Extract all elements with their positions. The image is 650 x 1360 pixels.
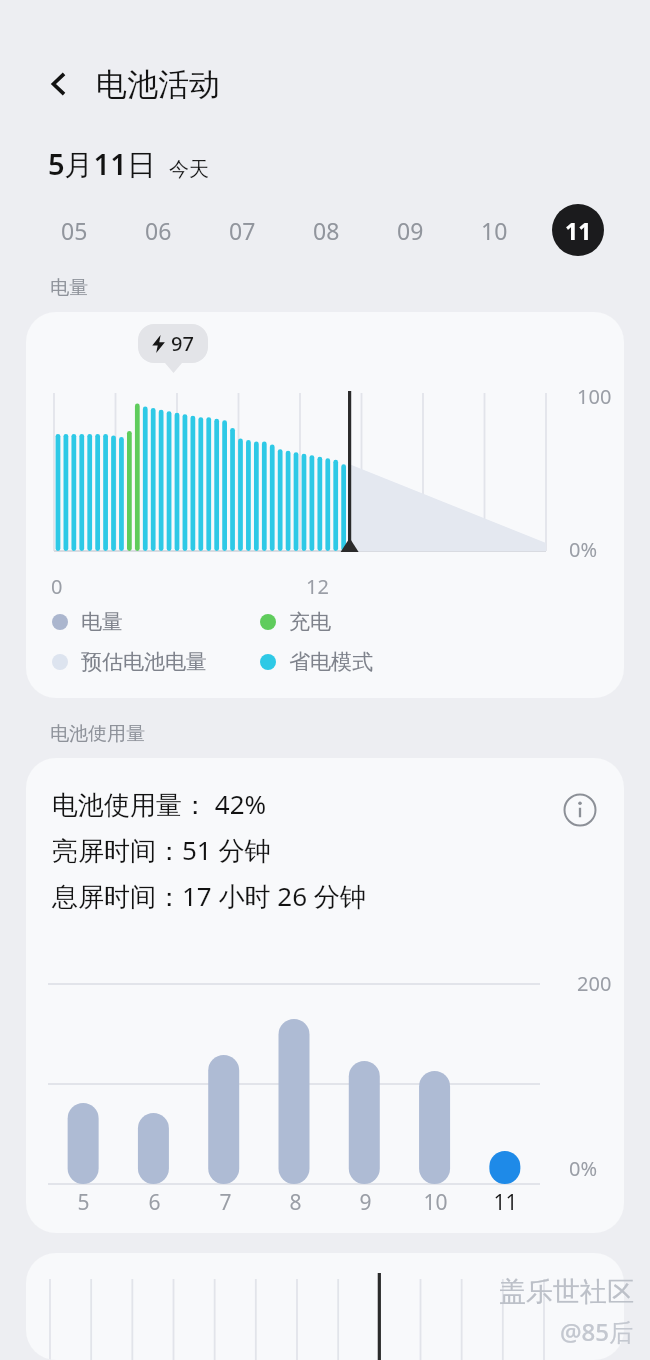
staticText: 5 bbox=[77, 1188, 90, 1217]
staticText: 0 bbox=[51, 573, 63, 600]
staticText: 09 bbox=[397, 215, 424, 246]
staticText: 电量 bbox=[81, 609, 123, 635]
button[interactable]: 电量 bbox=[52, 609, 123, 635]
staticText: 11 bbox=[493, 1188, 518, 1217]
staticText: 200 bbox=[577, 970, 612, 997]
button[interactable]: 充电 bbox=[260, 609, 331, 635]
button[interactable]: 97 bbox=[26, 312, 624, 698]
button[interactable]: 07 bbox=[200, 202, 284, 258]
staticText: 07 bbox=[229, 215, 256, 246]
button[interactable]: 11 bbox=[536, 202, 620, 258]
staticText: 97 bbox=[171, 330, 194, 357]
staticText: 10 bbox=[481, 215, 508, 246]
staticText: 息屏时间：17 小时 26 分钟 bbox=[52, 878, 366, 914]
button[interactable]: Back bbox=[32, 57, 86, 111]
staticText: 5月11日 bbox=[48, 144, 156, 184]
button[interactable]: 电池使用量： 42% bbox=[26, 758, 624, 1233]
staticText: 0% bbox=[569, 1155, 598, 1182]
button[interactable]: 预估电池电量 bbox=[52, 649, 207, 675]
button[interactable] bbox=[26, 1253, 624, 1360]
staticText: @85后 bbox=[560, 1315, 634, 1348]
staticText: 充电 bbox=[289, 609, 331, 635]
button[interactable]: 09 bbox=[368, 202, 452, 258]
staticText: 亮屏时间：51 分钟 bbox=[52, 832, 271, 868]
staticText: 电量 bbox=[50, 276, 88, 300]
staticText: 7 bbox=[219, 1188, 232, 1217]
staticText: 6 bbox=[148, 1188, 161, 1217]
staticText: 9 bbox=[359, 1188, 372, 1217]
staticText: 盖乐世社区 bbox=[499, 1275, 634, 1309]
staticText: 100 bbox=[577, 383, 612, 410]
staticText: 11 bbox=[565, 215, 592, 246]
staticText: 8 bbox=[289, 1188, 302, 1217]
staticText: 今天 bbox=[169, 157, 209, 182]
staticText: 电池活动 bbox=[96, 65, 220, 104]
button[interactable]: 05 bbox=[32, 202, 116, 258]
staticText: 10 bbox=[423, 1188, 448, 1217]
button[interactable]: 省电模式 bbox=[260, 649, 373, 675]
staticText: 预估电池电量 bbox=[81, 649, 207, 675]
staticText: 省电模式 bbox=[289, 649, 373, 675]
button[interactable]: 08 bbox=[284, 202, 368, 258]
staticText: 05 bbox=[61, 215, 88, 246]
staticText: 0% bbox=[569, 536, 598, 563]
staticText: 电池使用量： 42% bbox=[52, 786, 267, 822]
staticText: 06 bbox=[145, 215, 172, 246]
button[interactable]: Info bbox=[556, 786, 604, 834]
staticText: 电池使用量 bbox=[50, 722, 145, 746]
staticText: 08 bbox=[313, 215, 340, 246]
staticText: 12 bbox=[306, 573, 329, 600]
button[interactable]: 10 bbox=[452, 202, 536, 258]
button[interactable]: 06 bbox=[116, 202, 200, 258]
